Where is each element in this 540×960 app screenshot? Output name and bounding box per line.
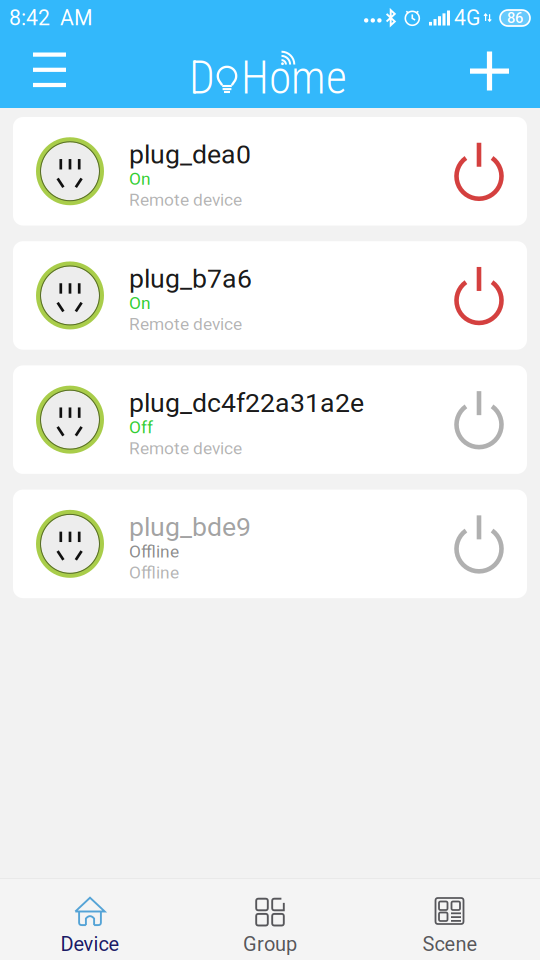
staticText: plug_dea0 xyxy=(129,139,251,170)
button[interactable]: plug_dc4f22a31a2e xyxy=(13,365,527,474)
staticText: On xyxy=(129,169,151,189)
button[interactable]: plug_dea0 xyxy=(13,117,527,225)
button[interactable]: Menu xyxy=(0,36,86,108)
staticText: 4G xyxy=(454,5,481,30)
staticText: Off xyxy=(129,417,153,437)
staticText: D xyxy=(189,51,215,104)
button[interactable]: Scene xyxy=(360,878,540,960)
button[interactable]: Add device xyxy=(450,36,540,108)
staticText: 8:42 AM xyxy=(9,5,93,30)
staticText: Remote device xyxy=(129,190,242,210)
staticText: Offline xyxy=(129,541,179,562)
staticText: Offline xyxy=(129,562,179,583)
staticText: Scene xyxy=(422,932,477,956)
staticText: Remote device xyxy=(129,314,242,334)
staticText: plug_b7a6 xyxy=(129,263,252,294)
staticText: plug_dc4f22a31a2e xyxy=(129,387,364,418)
staticText: On xyxy=(129,293,151,313)
staticText: Home xyxy=(241,51,347,104)
button[interactable]: Device xyxy=(0,878,180,960)
staticText: Group xyxy=(243,932,297,956)
staticText: Device xyxy=(60,932,119,956)
button[interactable]: plug_bde9 xyxy=(13,490,527,598)
button[interactable]: plug_b7a6 xyxy=(13,241,527,350)
staticText: plug_bde9 xyxy=(129,511,251,543)
staticText: Remote device xyxy=(129,438,242,458)
button[interactable]: Group xyxy=(180,878,360,960)
staticText: 86 xyxy=(507,9,523,27)
